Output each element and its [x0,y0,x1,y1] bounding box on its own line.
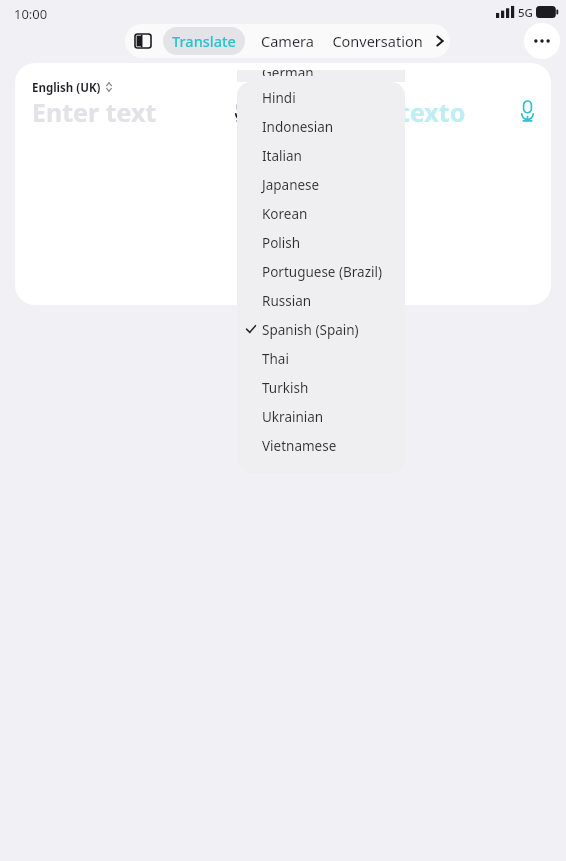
button[interactable]: Show sidebar [125,24,161,58]
button[interactable]: Thai [237,343,405,372]
staticText: Russian [262,292,312,310]
staticText: Spanish (Spain) [262,321,359,339]
button[interactable]: Russian [237,285,405,314]
staticText: English (UK) [32,80,101,96]
staticText: Indonesian [262,118,334,136]
button[interactable]: Indonesian [237,111,405,140]
staticText: Polish [262,234,301,252]
staticText: Korean [262,205,308,223]
button[interactable]: Conversation [325,26,429,56]
button[interactable]: Vietnamese [237,430,405,459]
staticText: Thai [262,350,289,368]
button[interactable]: Turkish [237,372,405,401]
staticText: 5G [518,5,533,21]
staticText: Vietnamese [262,437,337,455]
button[interactable]: Spanish (Spain) [283,63,551,305]
button[interactable]: Ukrainian [237,401,405,430]
staticText: Enter text [32,95,157,129]
button[interactable]: Italian [237,140,405,169]
staticText: Japanese [262,176,320,194]
button[interactable]: Translate [163,27,245,55]
staticText: Escribir texto [300,95,466,129]
staticText: Italian [262,147,302,165]
staticText: Hindi [262,89,296,107]
button[interactable]: Spanish (Spain) [237,314,405,343]
staticText: Turkish [262,379,309,397]
button[interactable]: Polish [237,227,405,256]
staticText: Ukrainian [262,408,324,426]
staticText: 10:00 [14,5,48,23]
button[interactable]: Camera [251,26,323,56]
button[interactable]: Speak English [223,93,259,129]
button[interactable]: Korean [237,198,405,227]
button[interactable]: Hindi [237,82,405,111]
staticText: Conversation [332,31,423,51]
button[interactable]: Portuguese (Brazil) [237,256,405,285]
button[interactable]: More options [524,23,560,59]
button[interactable]: Japanese [237,169,405,198]
staticText: Camera [261,31,314,51]
button[interactable]: More modes [429,26,450,56]
staticText: Portuguese (Brazil) [262,263,383,281]
button[interactable]: English (UK) [15,63,283,305]
staticText: German [262,70,314,76]
button[interactable]: Speak Spanish [509,93,545,129]
staticText: Translate [172,31,236,51]
